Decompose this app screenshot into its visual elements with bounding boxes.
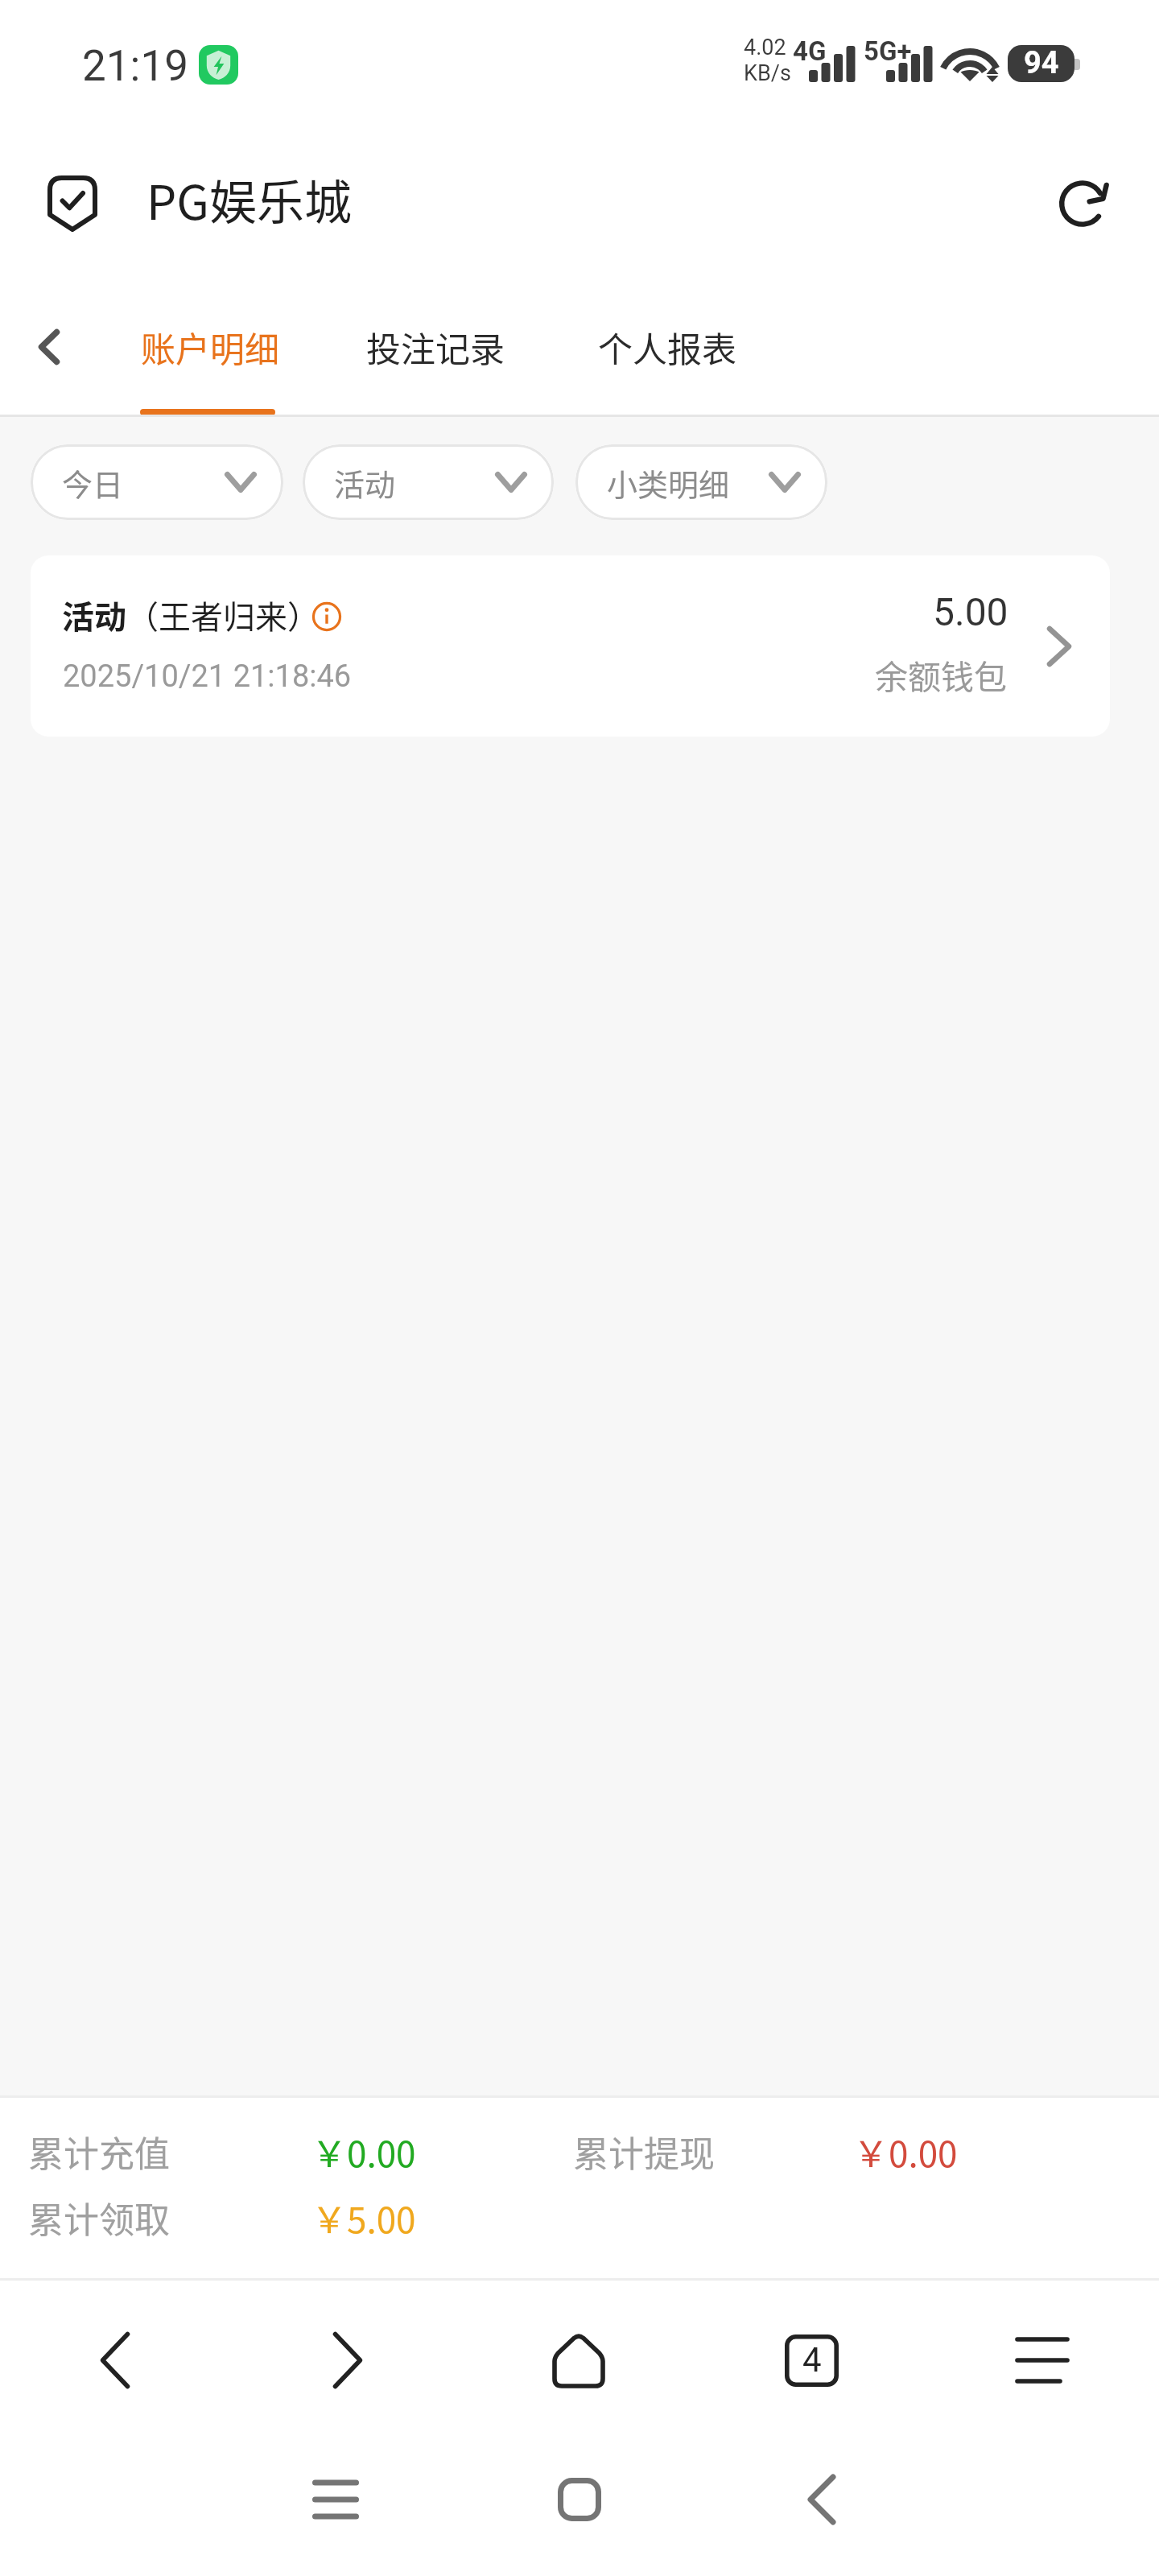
staticText: 累计提现 xyxy=(573,2126,853,2178)
staticText: 累计领取 xyxy=(28,2192,311,2244)
staticText: 小类明细 xyxy=(607,460,730,505)
button[interactable]: Menu xyxy=(1002,2320,1083,2401)
button[interactable]: Forward xyxy=(307,2320,388,2401)
button[interactable]: 活动（王者归来） xyxy=(31,555,1110,737)
button[interactable]: 活动 xyxy=(303,444,554,520)
button[interactable]: Back xyxy=(75,2320,155,2401)
staticText: 5G+ xyxy=(864,35,912,67)
staticText: 2025/10/21 21:18:46 xyxy=(63,658,352,695)
button[interactable]: Refresh xyxy=(1046,165,1124,242)
staticText: 4 xyxy=(802,2340,822,2380)
staticText: 余额钱包 xyxy=(875,650,1007,698)
staticText: 4G xyxy=(793,35,827,67)
staticText: KB/s xyxy=(744,60,791,86)
button[interactable]: Tabs xyxy=(771,2320,852,2401)
button[interactable]: Home xyxy=(538,2320,619,2401)
button[interactable]: Back xyxy=(782,2459,862,2540)
button[interactable]: Home xyxy=(539,2459,620,2540)
staticText: 累计充值 xyxy=(28,2126,311,2178)
button[interactable]: 账户明细 xyxy=(141,298,279,396)
staticText: 个人报表 xyxy=(598,322,736,372)
staticText: 活动（王者归来） xyxy=(62,592,320,638)
staticText: 5.00 xyxy=(933,589,1008,634)
staticText: PG娱乐城 xyxy=(146,165,352,233)
staticText: 94 xyxy=(1024,45,1059,81)
button[interactable]: 今日 xyxy=(31,444,283,520)
staticText: ￥0.00 xyxy=(311,2126,573,2178)
staticText: ￥0.00 xyxy=(853,2126,958,2178)
staticText: 账户明细 xyxy=(141,322,279,372)
button[interactable]: 个人报表 xyxy=(598,298,736,396)
button[interactable]: Back xyxy=(17,315,81,379)
staticText: 今日 xyxy=(62,460,124,505)
button[interactable]: 投注记录 xyxy=(366,298,505,396)
button[interactable]: 小类明细 xyxy=(575,444,827,520)
staticText: 投注记录 xyxy=(366,322,505,372)
staticText: 活动 xyxy=(334,460,396,505)
staticText: 21:19 xyxy=(82,41,188,91)
staticText: 4.02 xyxy=(744,35,786,60)
staticText: ￥5.00 xyxy=(311,2192,416,2244)
button[interactable]: Recents xyxy=(295,2459,376,2540)
